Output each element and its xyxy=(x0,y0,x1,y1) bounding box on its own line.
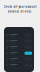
button[interactable]: Account row xyxy=(6,44,32,50)
button[interactable]: Account row xyxy=(6,32,32,38)
button[interactable]: Account row xyxy=(6,50,32,56)
staticText: Check all your account xyxy=(3,5,36,8)
button[interactable]: Account row xyxy=(6,38,32,44)
staticText: balance at once. xyxy=(7,10,32,13)
button[interactable]: Account row xyxy=(6,62,32,68)
button[interactable]: Account row xyxy=(6,56,32,62)
